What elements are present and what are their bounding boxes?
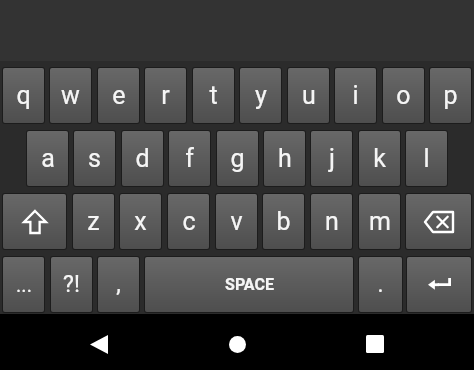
button[interactable]: i [335,68,376,123]
button[interactable]: b [263,194,304,249]
button[interactable]: Home [206,316,268,370]
staticText: j [329,144,335,173]
button[interactable]: , [98,257,139,312]
button[interactable]: p [430,68,471,123]
button[interactable]: x [120,194,161,249]
button[interactable]: y [240,68,281,123]
button[interactable]: l [406,131,447,186]
button[interactable]: f [169,131,210,186]
button[interactable]: m [359,194,400,249]
button[interactable]: j [311,131,352,186]
staticText: a [41,144,55,173]
button[interactable]: Backspace [406,194,471,249]
button[interactable]: d [122,131,163,186]
button[interactable]: h [264,131,305,186]
staticText: e [112,81,126,110]
staticText: v [230,207,243,236]
button[interactable]: o [383,68,424,123]
staticText: z [87,207,100,236]
staticText: r [161,81,170,110]
staticText: k [373,144,386,173]
staticText: h [278,144,292,173]
button[interactable]: w [50,68,91,123]
staticText: s [88,144,101,173]
button[interactable]: r [145,68,186,123]
staticText: y [255,81,267,110]
button[interactable]: g [217,131,258,186]
button[interactable]: k [359,131,400,186]
button[interactable]: e [98,68,139,123]
staticText: w [61,81,80,110]
button[interactable]: SPACE [145,257,353,312]
staticText: b [276,207,291,236]
staticText: m [369,207,391,236]
button[interactable]: u [288,68,329,123]
staticText: d [135,144,150,173]
button[interactable]: c [168,194,209,249]
staticText: p [443,81,458,110]
button[interactable]: Shift [3,194,66,249]
staticText: ?! [63,271,80,298]
button[interactable]: ... [3,257,44,312]
button[interactable]: . [359,257,402,312]
staticText: . [377,271,384,298]
staticText: o [396,81,411,110]
staticText: g [230,144,245,173]
staticText: x [134,207,147,236]
staticText: SPACE [225,275,274,294]
staticText: n [325,207,339,236]
staticText: ... [16,273,32,296]
staticText: , [116,271,121,298]
staticText: t [209,81,218,110]
staticText: u [302,81,316,110]
button[interactable]: n [311,194,352,249]
button[interactable]: Enter [407,257,471,312]
button[interactable]: Back [68,316,130,370]
button[interactable]: q [3,68,44,123]
staticText: c [182,207,196,236]
staticText: f [185,144,194,173]
button[interactable]: s [74,131,115,186]
button[interactable]: z [73,194,114,249]
button[interactable]: v [216,194,257,249]
staticText: i [352,81,359,110]
staticText: q [16,81,31,110]
button[interactable]: t [193,68,234,123]
button[interactable]: ?! [51,257,92,312]
button[interactable]: Recents [344,316,406,370]
staticText: l [423,144,430,173]
button[interactable]: a [27,131,68,186]
